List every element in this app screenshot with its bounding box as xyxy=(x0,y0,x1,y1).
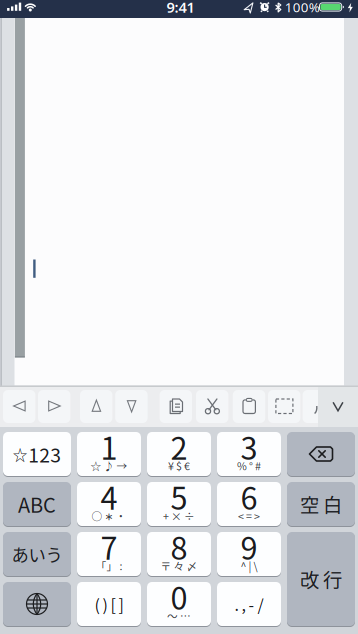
staticText: + × ÷ xyxy=(163,508,195,523)
button[interactable]: Kana xyxy=(3,532,71,576)
staticText: ABC xyxy=(18,489,56,518)
button[interactable]: 0 xyxy=(147,582,211,626)
button[interactable]: Brackets xyxy=(77,582,141,626)
staticText: 6 xyxy=(240,474,257,519)
button[interactable]: Delete xyxy=(287,432,355,476)
button[interactable]: 5 xyxy=(147,482,211,526)
button[interactable]: 1 xyxy=(77,432,141,476)
button[interactable]: Move cursor up xyxy=(80,390,112,423)
staticText: ¥ $ € xyxy=(168,458,190,473)
staticText: ○ ∗ ・ xyxy=(91,508,126,523)
staticText: ☆ ♪ → xyxy=(90,458,127,473)
button[interactable]: Return xyxy=(287,532,355,626)
staticText: 2 xyxy=(170,424,187,469)
staticText: 3 xyxy=(240,424,257,469)
staticText: . , - / xyxy=(234,592,263,616)
staticText: 8 xyxy=(170,524,187,569)
button[interactable]: ABC xyxy=(3,482,71,526)
button[interactable]: Dismiss keyboard xyxy=(318,387,358,427)
button[interactable]: 9 xyxy=(217,532,281,576)
staticText: 〜 … xyxy=(167,608,191,623)
staticText: ( ) [ ] xyxy=(94,592,123,616)
staticText: 9:41 xyxy=(166,0,194,17)
staticText: 改 行 xyxy=(300,565,342,593)
staticText: 123 xyxy=(28,440,61,468)
staticText: < = > xyxy=(238,508,260,523)
button[interactable]: 3 xyxy=(217,432,281,476)
staticText: 0 xyxy=(170,574,187,619)
staticText: 1 xyxy=(100,424,117,469)
button[interactable]: 4 xyxy=(77,482,141,526)
staticText: 7 xyxy=(100,524,117,569)
staticText: 4 xyxy=(100,474,117,519)
staticText: 100% xyxy=(285,0,320,16)
button[interactable]: Move cursor down xyxy=(115,390,148,423)
button[interactable]: 7 xyxy=(77,532,141,576)
staticText: あいう xyxy=(11,541,62,567)
button[interactable]: 8 xyxy=(147,532,211,576)
staticText: ^ | \ xyxy=(240,558,257,573)
button[interactable]: Select xyxy=(268,390,300,423)
button[interactable]: More xyxy=(303,390,335,423)
staticText: 空 白 xyxy=(300,490,342,518)
button[interactable]: Move cursor right xyxy=(38,390,70,423)
button[interactable]: 2 xyxy=(147,432,211,476)
button[interactable]: Symbols and numbers xyxy=(3,432,71,476)
staticText: 〒 々 〆 xyxy=(160,558,197,573)
button[interactable]: Next keyboard xyxy=(3,582,71,626)
button[interactable]: Paste xyxy=(233,390,265,423)
staticText: 5 xyxy=(170,474,187,519)
button[interactable]: Copy xyxy=(160,390,192,423)
staticText: % ° # xyxy=(237,458,261,473)
staticText: ☆ xyxy=(13,443,28,465)
staticText: 「」 : xyxy=(95,558,122,573)
button[interactable]: 6 xyxy=(217,482,281,526)
button[interactable]: Move cursor left xyxy=(3,390,35,423)
button[interactable]: Cut xyxy=(196,390,228,423)
staticText: 9 xyxy=(240,524,257,569)
button[interactable]: Punctuation xyxy=(217,582,281,626)
button[interactable]: Space xyxy=(287,482,355,526)
